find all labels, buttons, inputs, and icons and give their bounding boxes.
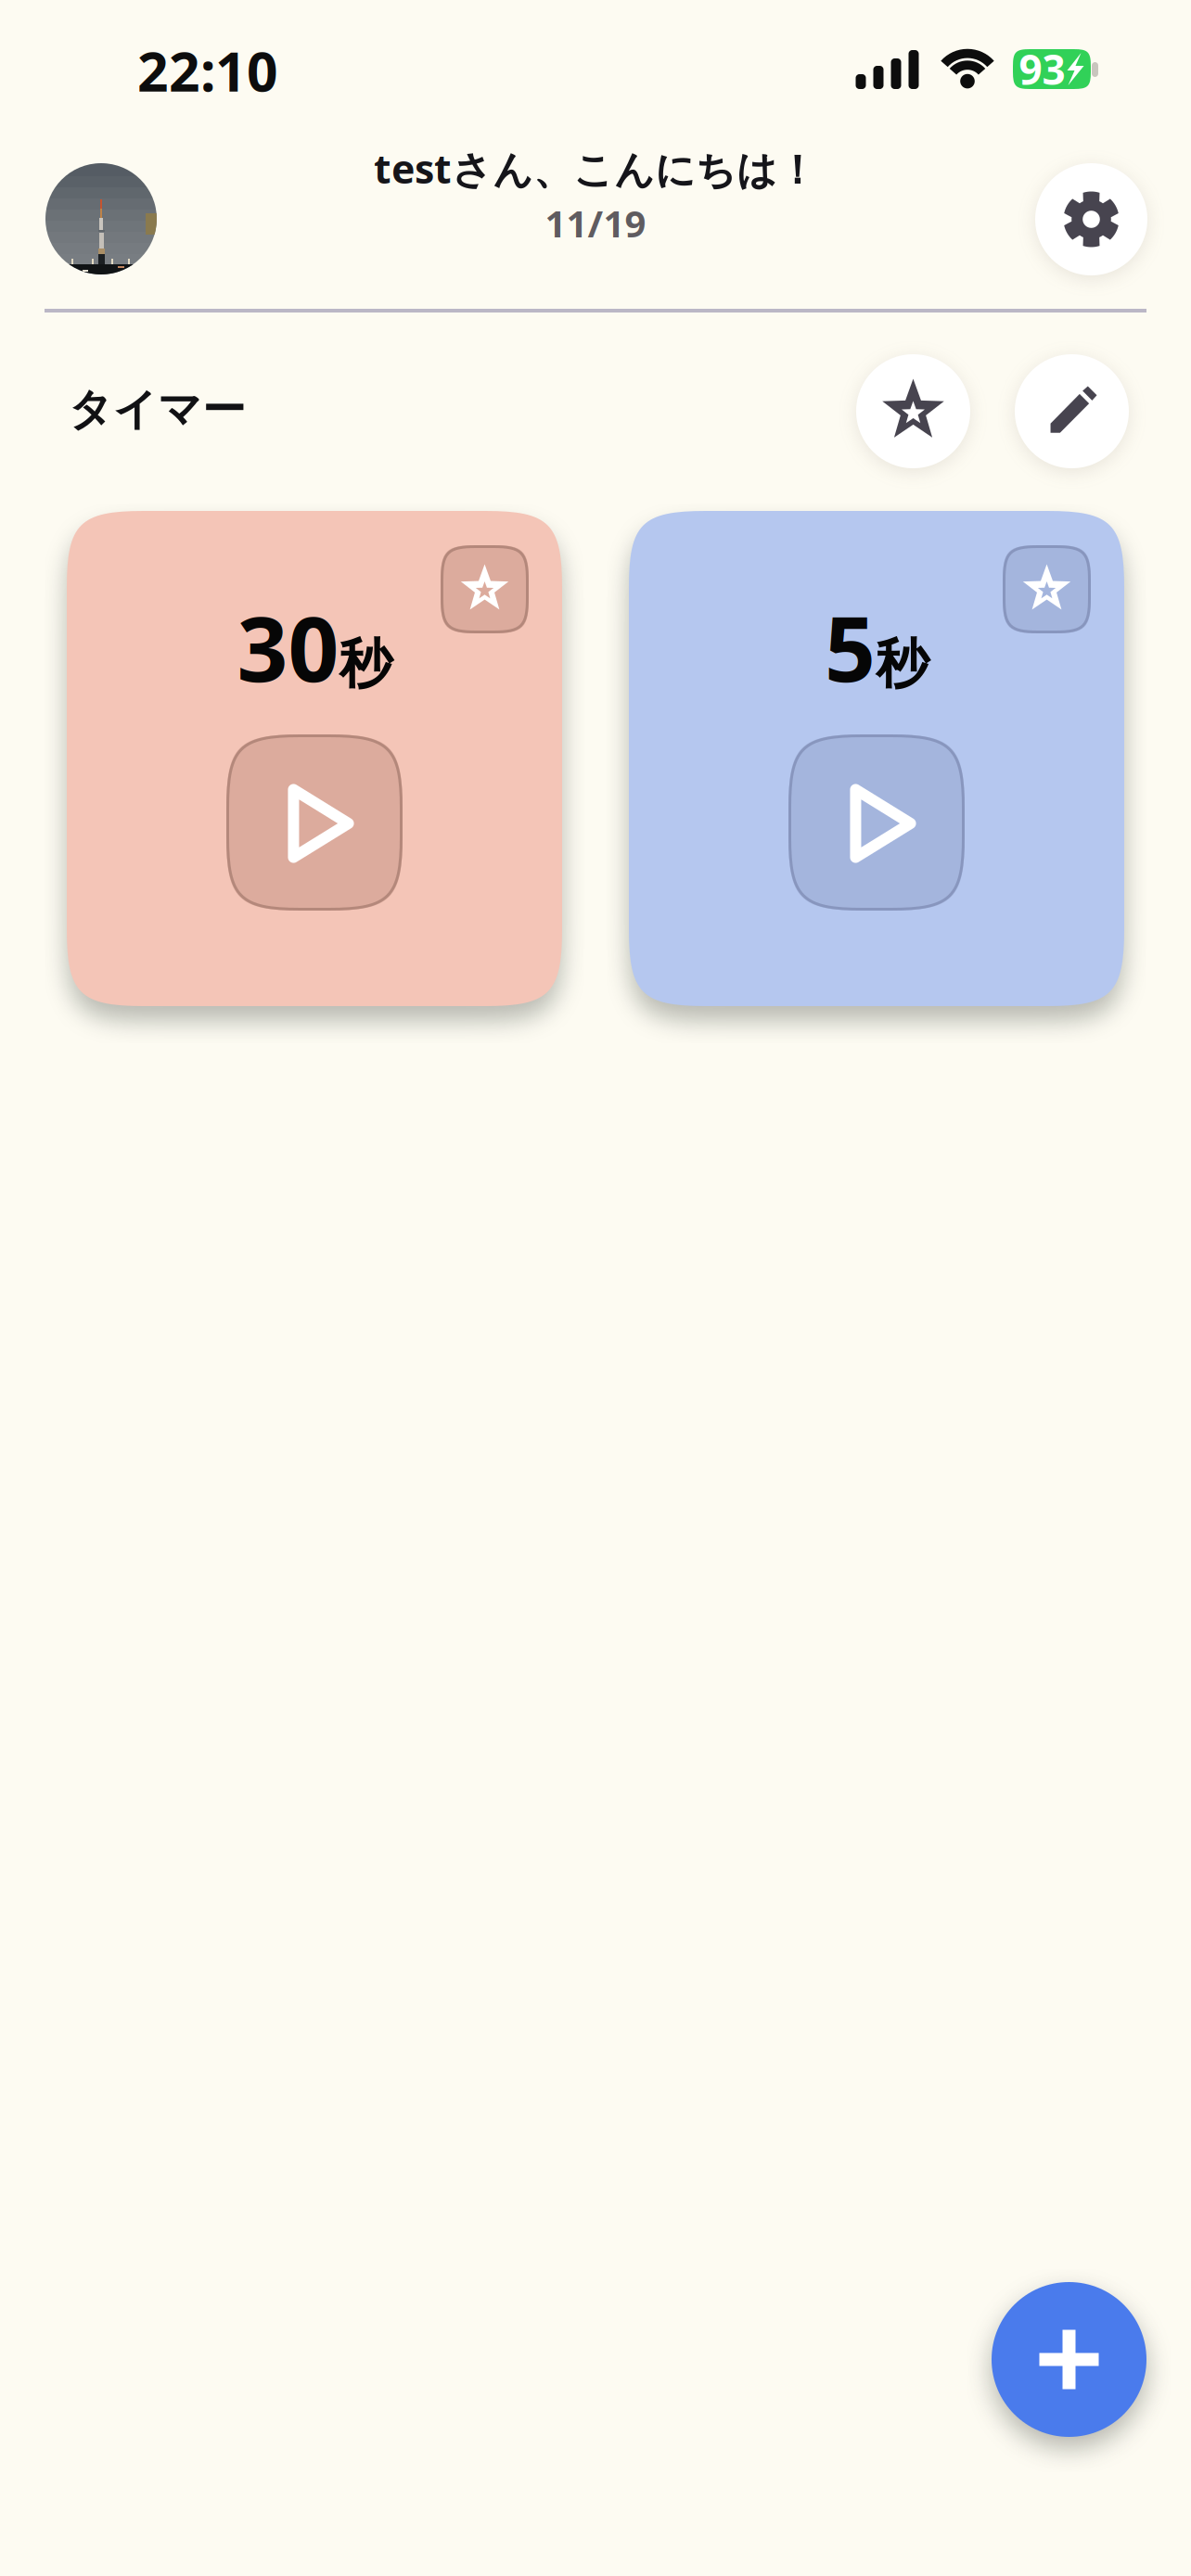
staticText: 秒 xyxy=(339,631,392,697)
button[interactable]: 5 xyxy=(629,511,1124,1006)
staticText: タイマー xyxy=(69,383,246,436)
staticText: 秒 xyxy=(876,631,928,697)
button[interactable]: Show favorites xyxy=(856,354,970,468)
staticText: 30 xyxy=(237,588,339,706)
button[interactable]: 30 xyxy=(67,511,562,1006)
button[interactable]: Edit timers xyxy=(1015,354,1129,468)
staticText: testさん、こんにちは！ xyxy=(374,142,817,195)
button[interactable]: Add timer xyxy=(992,2282,1146,2437)
button[interactable]: Profile photo xyxy=(45,163,157,274)
staticText: 5 xyxy=(825,588,876,706)
button[interactable]: Settings xyxy=(1035,163,1147,275)
staticText: 22:10 xyxy=(137,34,278,107)
staticText: 11/19 xyxy=(545,198,646,248)
staticText: 93 xyxy=(1019,42,1065,96)
